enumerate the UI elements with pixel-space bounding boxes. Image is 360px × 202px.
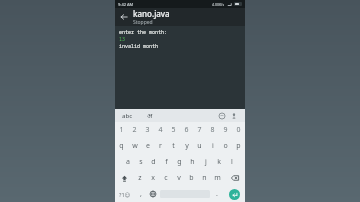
staticText: 7: [197, 125, 202, 135]
staticText: a: [126, 157, 130, 167]
button[interactable]: 4: [154, 122, 167, 138]
button[interactable]: 9: [219, 122, 232, 138]
button[interactable]: x: [146, 170, 159, 186]
staticText: p: [236, 141, 241, 151]
button[interactable]: 7: [193, 122, 206, 138]
staticText: .: [216, 189, 218, 199]
staticText: k: [217, 157, 221, 167]
button[interactable]: 3: [141, 122, 154, 138]
staticText: 4: [158, 125, 163, 135]
button[interactable]: b: [185, 170, 198, 186]
button[interactable]: Back: [115, 8, 133, 26]
button[interactable]: s: [134, 154, 147, 170]
button[interactable]: t: [167, 138, 180, 154]
staticText: enter the month:: [119, 29, 168, 36]
staticText: q: [119, 141, 124, 151]
staticText: g: [177, 157, 182, 167]
staticText: v: [177, 173, 181, 183]
button[interactable]: o: [219, 138, 232, 154]
staticText: r: [159, 141, 162, 151]
staticText: b: [189, 173, 194, 183]
staticText: c: [164, 173, 168, 183]
staticText: z: [138, 173, 142, 183]
button[interactable]: k: [212, 154, 225, 170]
button[interactable]: z: [133, 170, 146, 186]
button[interactable]: q: [115, 138, 128, 154]
button[interactable]: Emoji: [216, 110, 228, 122]
staticText: abc: [122, 112, 133, 120]
button[interactable]: n: [198, 170, 211, 186]
staticText: 6: [184, 125, 189, 135]
button[interactable]: a: [121, 154, 134, 170]
button[interactable]: g: [173, 154, 186, 170]
staticText: 2: [132, 125, 137, 135]
button[interactable]: ?1☺: [115, 186, 135, 202]
button[interactable]: Enter: [229, 189, 240, 200]
button[interactable]: y: [180, 138, 193, 154]
staticText: e: [146, 141, 150, 151]
button[interactable]: i: [206, 138, 219, 154]
button[interactable]: w: [128, 138, 141, 154]
staticText: ,: [140, 189, 142, 199]
button[interactable]: .: [211, 186, 223, 202]
button[interactable]: 2: [128, 122, 141, 138]
staticText: n: [202, 173, 207, 183]
button[interactable]: p: [232, 138, 245, 154]
button[interactable]: f: [160, 154, 173, 170]
staticText: y: [185, 141, 189, 151]
staticText: o: [223, 141, 228, 151]
staticText: Stopped: [133, 19, 153, 26]
button[interactable]: 8: [206, 122, 219, 138]
button[interactable]: ,: [135, 186, 147, 202]
button[interactable]: e: [141, 138, 154, 154]
button[interactable]: d: [147, 154, 160, 170]
button[interactable]: 5: [167, 122, 180, 138]
staticText: w: [132, 141, 138, 151]
staticText: 9: [223, 125, 228, 135]
button[interactable]: u: [193, 138, 206, 154]
staticText: h: [190, 157, 195, 167]
button[interactable]: v: [172, 170, 185, 186]
staticText: s: [139, 157, 143, 167]
button[interactable]: 0: [232, 122, 245, 138]
staticText: 5: [171, 125, 176, 135]
button[interactable]: Change language: [147, 186, 159, 202]
staticText: x: [151, 173, 155, 183]
button[interactable]: m: [211, 170, 224, 186]
staticText: 4.00K/s: [212, 2, 225, 7]
button[interactable]: j: [199, 154, 212, 170]
staticText: f: [165, 157, 168, 167]
staticText: 8: [210, 125, 215, 135]
button[interactable]: अ: [145, 111, 155, 121]
button[interactable]: c: [159, 170, 172, 186]
staticText: 1: [119, 125, 124, 135]
button[interactable]: Backspace: [224, 170, 245, 186]
staticText: d: [151, 157, 156, 167]
button[interactable]: l: [225, 154, 238, 170]
staticText: 3: [145, 125, 150, 135]
staticText: अ: [147, 111, 153, 121]
button[interactable]: h: [186, 154, 199, 170]
staticText: u: [197, 141, 202, 151]
staticText: 0: [236, 125, 241, 135]
staticText: ?1☺: [119, 191, 131, 198]
button[interactable]: 6: [180, 122, 193, 138]
staticText: 13: [119, 36, 126, 43]
staticText: i: [212, 141, 214, 151]
button[interactable]: r: [154, 138, 167, 154]
button[interactable]: 1: [115, 122, 128, 138]
staticText: l: [231, 157, 233, 167]
staticText: kano.java: [133, 8, 170, 19]
staticText: 9:42 AM: [118, 2, 134, 7]
staticText: t: [172, 141, 175, 151]
button[interactable]: Shift: [115, 170, 133, 186]
staticText: invalid month: [119, 43, 159, 50]
staticText: j: [205, 157, 207, 167]
button[interactable]: abc: [120, 112, 135, 120]
staticText: m: [214, 173, 221, 183]
button[interactable]: Voice input: [228, 110, 240, 122]
